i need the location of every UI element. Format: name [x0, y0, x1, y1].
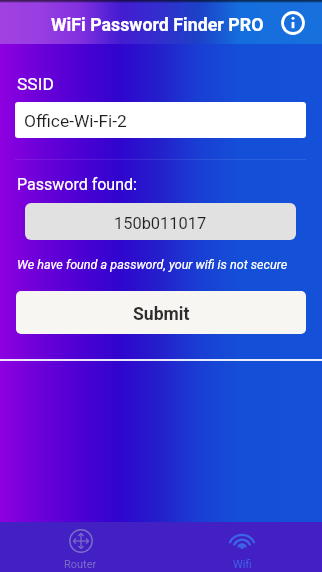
button[interactable]: Office-Wi-Fi-2: [15, 102, 306, 138]
button[interactable]: Submit: [16, 291, 306, 334]
staticText: WiFi Password Finder PRO: [51, 14, 264, 35]
button[interactable]: Info: [281, 11, 305, 35]
staticText: SSID: [17, 74, 54, 94]
staticText: Wifi: [233, 558, 252, 571]
button[interactable]: 150b011017: [25, 203, 296, 240]
button[interactable]: Wifi: [161, 522, 322, 572]
staticText: We have found a password, your wifi is n…: [17, 257, 288, 272]
staticText: Submit: [133, 304, 190, 325]
staticText: Office-Wi-Fi-2: [24, 111, 127, 131]
staticText: 150b011017: [114, 214, 207, 233]
button[interactable]: Router: [0, 522, 161, 572]
staticText: Router: [64, 558, 97, 571]
staticText: Password found:: [17, 175, 137, 194]
